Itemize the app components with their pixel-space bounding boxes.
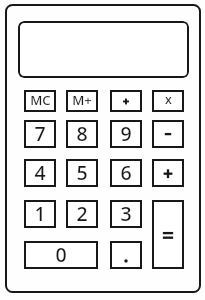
button[interactable]: Plus [152,159,184,187]
button[interactable]: Minus [152,120,184,148]
staticText: 6 [120,159,132,186]
button[interactable]: 4 [24,159,56,187]
button[interactable]: MC [24,90,56,112]
staticText: 4 [34,159,46,186]
button[interactable]: Divide [110,90,142,112]
button[interactable]: 3 [110,200,142,228]
staticText: 9 [120,120,132,147]
button[interactable]: Multiply [152,90,184,112]
button[interactable]: 7 [24,120,56,148]
staticText: M+ [72,91,92,109]
button[interactable]: 1 [24,200,56,228]
button[interactable]: 0 [24,241,98,269]
staticText: 3 [120,200,132,227]
staticText: 7 [34,120,46,147]
button[interactable]: 5 [66,159,98,187]
button[interactable]: 2 [66,200,98,228]
button[interactable]: Display [18,21,189,78]
staticText: 1 [34,200,46,227]
staticText: 5 [76,159,88,186]
staticText: 2 [76,200,88,227]
button[interactable]: Equals [152,200,184,269]
button[interactable]: 9 [110,120,142,148]
button[interactable]: M+ [66,90,98,112]
staticText: 8 [76,120,88,147]
staticText: MC [30,91,51,109]
button[interactable]: 6 [110,159,142,187]
button[interactable]: Decimal point [110,241,142,269]
staticText: x [165,91,172,108]
staticText: 0 [55,241,67,268]
button[interactable]: 8 [66,120,98,148]
